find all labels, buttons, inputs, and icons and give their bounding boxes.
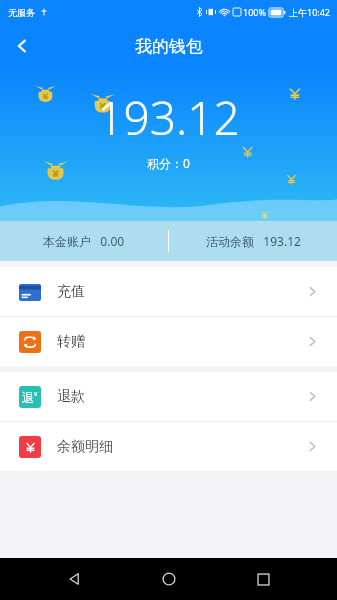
staticText: 我的钱包 (135, 36, 203, 57)
button[interactable]: 余额明细 (0, 422, 337, 471)
staticText: 余额明细 (57, 438, 113, 456)
staticText: 积分：0 (147, 155, 190, 171)
staticText: 转赠 (57, 333, 85, 351)
staticText: ¥ (34, 390, 38, 398)
button[interactable]: Recent apps (242, 558, 284, 600)
button[interactable]: Home (148, 558, 190, 600)
staticText: 活动余额 193.12 (206, 233, 301, 249)
staticText: 退 (22, 390, 34, 405)
button[interactable]: 转赠 (0, 317, 337, 366)
staticText: 193.12 (97, 86, 240, 149)
button[interactable]: Back (0, 24, 44, 68)
staticText: 100% (243, 6, 266, 18)
staticText: 充值 (57, 283, 85, 301)
staticText: 上午10:42 (289, 6, 331, 18)
staticText: 本金账户 0.00 (43, 233, 125, 249)
staticText: 退款 (57, 388, 85, 406)
staticText: 无服务 (8, 7, 35, 18)
button[interactable]: 充值 (0, 267, 337, 316)
button[interactable]: 退 (0, 372, 337, 421)
button[interactable]: Back (53, 558, 95, 600)
